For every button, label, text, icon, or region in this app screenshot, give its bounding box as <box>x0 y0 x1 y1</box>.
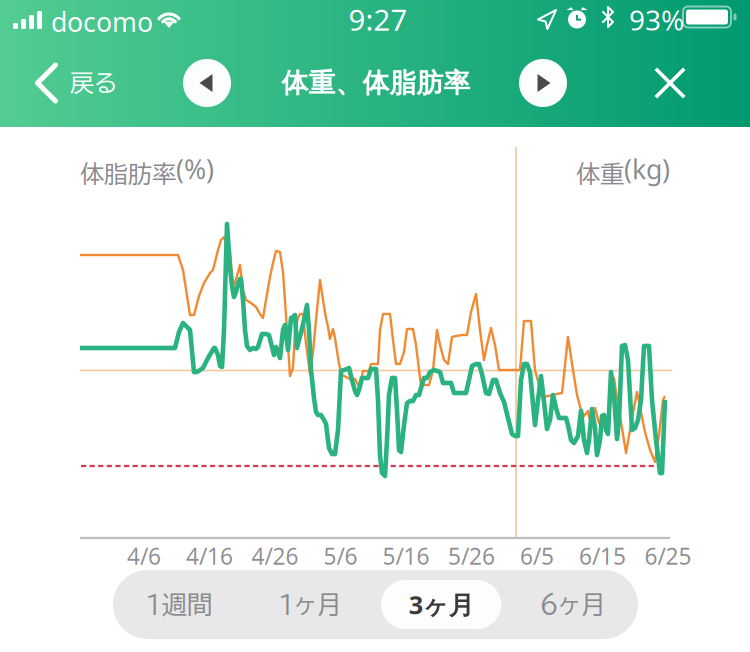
staticText: 6/15 <box>579 541 626 571</box>
button[interactable]: Previous period <box>183 59 231 107</box>
staticText: 5/26 <box>448 541 495 571</box>
button[interactable]: Close <box>626 43 714 123</box>
staticText: docomo <box>51 4 153 39</box>
staticText: 9:27 <box>348 0 407 39</box>
button[interactable]: Next period <box>519 59 567 107</box>
button[interactable]: 1週間 <box>113 570 244 639</box>
button[interactable]: 3ヶ月 <box>375 570 507 639</box>
staticText: 3ヶ月 <box>409 587 474 622</box>
staticText: 93% <box>629 1 684 38</box>
staticText: 5/16 <box>382 541 429 571</box>
staticText: 4/6 <box>127 541 161 571</box>
staticText: 5/6 <box>323 541 357 571</box>
staticText: 6/5 <box>520 541 554 571</box>
staticText: 体脂肪率(%) <box>80 151 214 187</box>
staticText: 6/25 <box>644 541 691 571</box>
staticText: 体重、体脂肪率 <box>281 66 470 100</box>
button[interactable]: 6ヶ月 <box>507 570 638 639</box>
staticText: 戻る <box>70 71 117 95</box>
button[interactable]: 1ヶ月 <box>244 570 375 639</box>
staticText: 4/26 <box>251 541 298 571</box>
staticText: 1ヶ月 <box>278 592 341 617</box>
button[interactable]: 戻る <box>0 43 137 123</box>
staticText: 4/16 <box>186 541 233 571</box>
staticText: 体重(kg) <box>576 151 670 187</box>
staticText: 1週間 <box>146 592 212 617</box>
staticText: 6ヶ月 <box>539 592 605 617</box>
